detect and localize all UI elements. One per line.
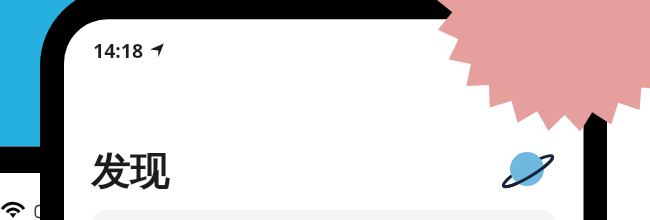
button[interactable]: 发现 xyxy=(91,147,169,196)
button[interactable]: Location xyxy=(147,39,168,61)
staticText: 14:18 xyxy=(93,37,144,64)
button[interactable]: Explore planet xyxy=(497,139,561,201)
